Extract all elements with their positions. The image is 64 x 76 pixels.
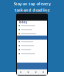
staticText: task and deadline [14, 7, 49, 13]
staticText: Stay on top of every [13, 1, 50, 6]
staticText: Today [18, 20, 26, 24]
